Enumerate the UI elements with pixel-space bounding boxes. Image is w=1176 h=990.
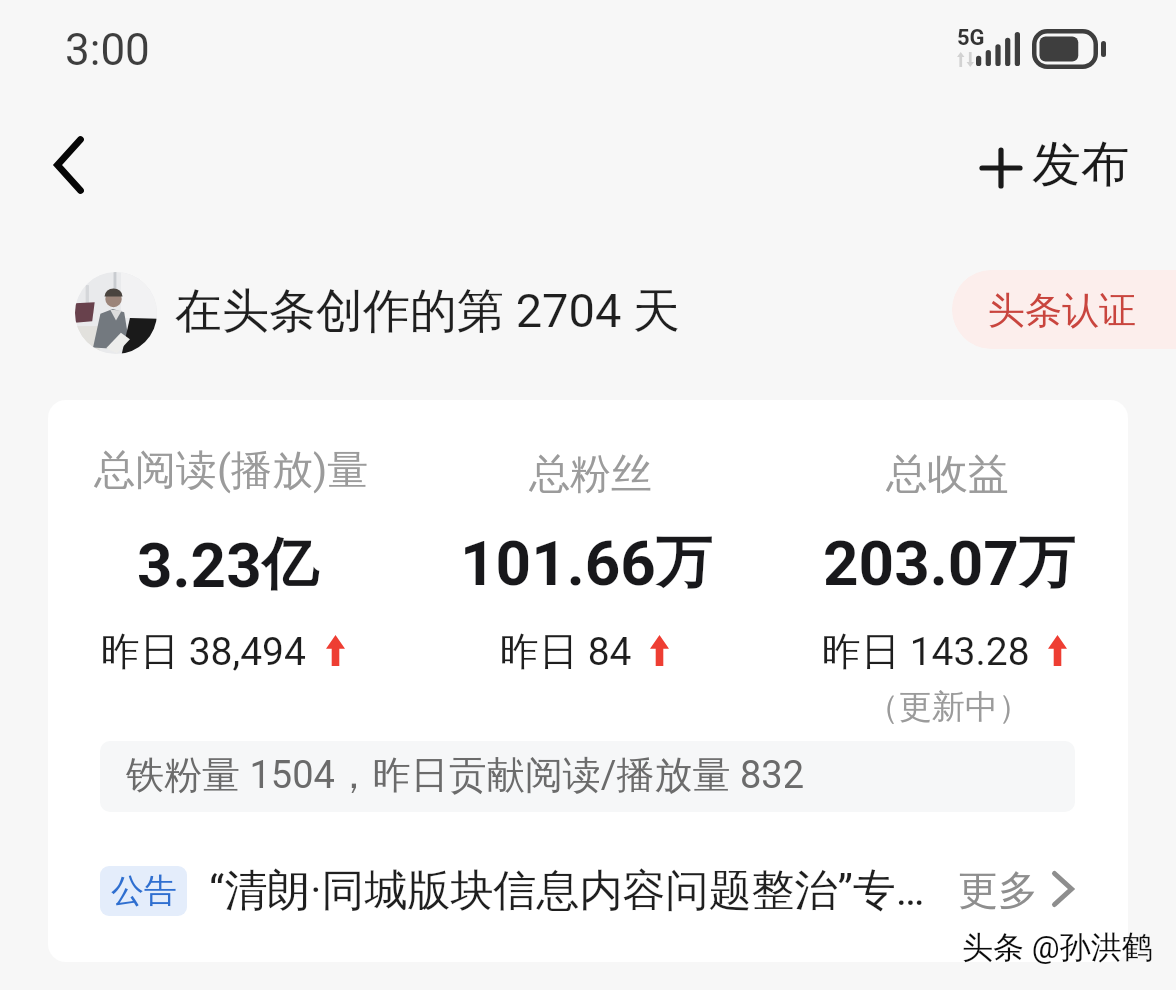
- button[interactable]: 总阅读(播放)量 3.23亿: [48, 430, 408, 720]
- staticText: 总粉丝: [529, 449, 652, 501]
- staticText: 总阅读(播放)量: [94, 445, 369, 497]
- staticText: 万: [1019, 527, 1075, 598]
- staticText: “清朗·同城版块信息内容问题整治”专…: [209, 864, 925, 918]
- button[interactable]: 铁粉量 1504，昨日贡献阅读/播放量 832: [100, 741, 1075, 812]
- staticText: 昨日 84: [500, 627, 632, 676]
- staticText: 总收益: [886, 449, 1009, 501]
- button[interactable]: 发布 Publish: [950, 118, 1150, 214]
- staticText: 在头条创作的第 2704 天: [175, 282, 680, 341]
- staticText: 5G: [957, 25, 985, 51]
- staticText: 3.23: [137, 529, 262, 602]
- staticText: 万: [656, 527, 712, 598]
- button[interactable]: 头条认证: [952, 270, 1176, 349]
- staticText: 203.07: [823, 527, 1019, 600]
- staticText: 发布: [1032, 134, 1130, 196]
- staticText: 亿: [262, 529, 318, 600]
- button[interactable]: 总收益 203.07万: [768, 430, 1128, 720]
- staticText: 101.66: [460, 527, 656, 600]
- staticText: 更多: [958, 865, 1038, 915]
- button[interactable]: 公告: [92, 850, 1092, 934]
- button[interactable]: Back: [14, 125, 124, 205]
- staticText: 公告: [111, 870, 177, 912]
- staticText: 3:00: [65, 24, 150, 76]
- staticText: （更新中）: [866, 686, 1031, 728]
- staticText: 头条认证: [988, 287, 1136, 334]
- staticText: 头条 @孙洪鹤: [962, 928, 1153, 967]
- staticText: 昨日 38,494: [101, 627, 306, 676]
- staticText: 昨日 143.28: [822, 627, 1030, 676]
- button[interactable]: 总粉丝 101.66万: [408, 430, 768, 720]
- staticText: 铁粉量 1504，昨日贡献阅读/播放量 832: [126, 751, 805, 799]
- button[interactable]: Profile photo: [75, 272, 157, 354]
